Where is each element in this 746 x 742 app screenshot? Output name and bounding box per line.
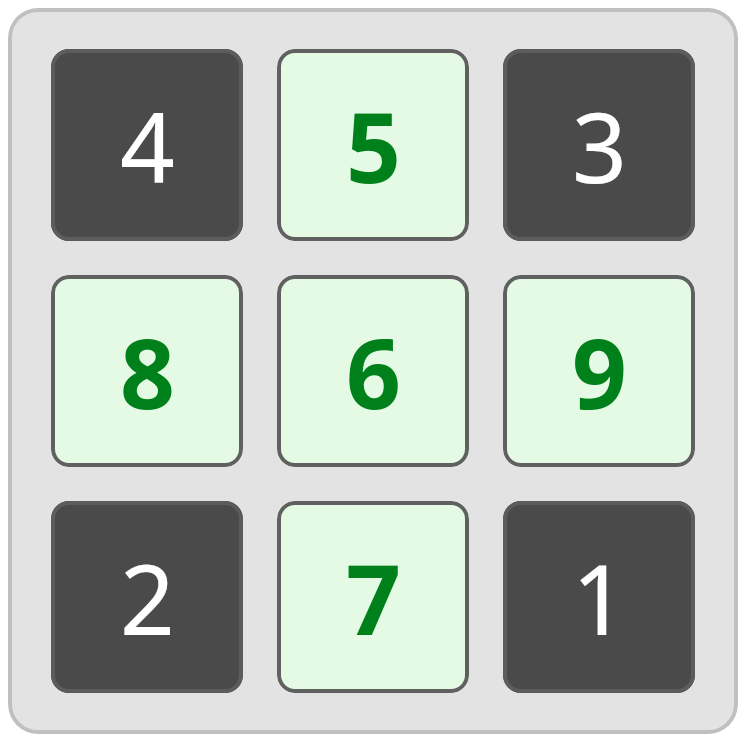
staticText: 9 [572,306,627,437]
button[interactable]: 3 [503,49,695,241]
button[interactable]: 2 [51,501,243,693]
staticText: 3 [572,80,627,211]
staticText: 6 [346,306,401,437]
button[interactable]: 7 [277,501,469,693]
staticText: 7 [346,532,401,663]
staticText: 8 [120,306,175,437]
button[interactable]: 5 [277,49,469,241]
button[interactable]: 9 [503,275,695,467]
button[interactable]: 8 [51,275,243,467]
staticText: 2 [120,532,175,663]
button[interactable]: 1 [503,501,695,693]
staticText: 4 [120,80,175,211]
staticText: 5 [346,80,401,211]
button[interactable]: 4 [51,49,243,241]
button[interactable]: 6 [277,275,469,467]
staticText: 1 [572,532,627,663]
